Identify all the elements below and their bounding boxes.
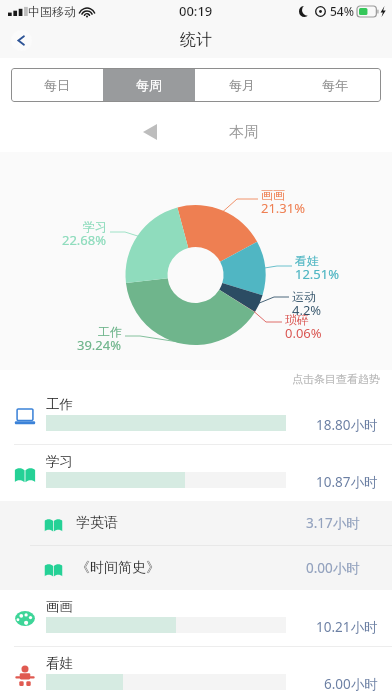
button[interactable]: 《时间简史》	[0, 546, 392, 590]
button[interactable]: 每周	[103, 68, 195, 102]
staticText: 4.2%	[292, 301, 322, 319]
staticText: 学英语	[76, 514, 118, 532]
button[interactable]: 学习	[0, 445, 392, 501]
staticText: 每月	[229, 77, 255, 93]
staticText: 0.06%	[285, 324, 322, 342]
staticText: 看娃	[46, 655, 73, 672]
staticText: 琐碎	[285, 312, 309, 327]
staticText: 22.68%	[62, 231, 107, 249]
staticText: 看娃	[295, 253, 319, 268]
button[interactable]: 学英语	[0, 501, 392, 545]
button[interactable]: 看娃	[0, 647, 392, 696]
staticText: 00:19	[179, 2, 213, 20]
staticText: 画画	[261, 187, 285, 202]
button[interactable]: 画画	[0, 590, 392, 646]
button[interactable]: 每日	[11, 68, 103, 102]
staticText: 工作	[98, 324, 122, 339]
staticText: 画画	[46, 598, 73, 615]
button[interactable]: 每年	[288, 68, 381, 102]
staticText: 中国移动	[28, 4, 76, 19]
button[interactable]: Previous week	[133, 115, 167, 149]
staticText: 工作	[46, 396, 73, 413]
staticText: 每周	[136, 77, 162, 93]
staticText: 《时间简史》	[76, 559, 160, 577]
staticText: 10.21小时	[316, 618, 378, 636]
button[interactable]: 工作	[0, 388, 392, 444]
staticText: 统计	[180, 30, 212, 50]
staticText: 3.17小时	[306, 514, 360, 532]
staticText: 54%	[330, 3, 354, 19]
staticText: 18.80小时	[316, 416, 378, 434]
staticText: 运动	[292, 289, 316, 304]
staticText: 0.00小时	[306, 559, 360, 577]
staticText: 每日	[44, 77, 70, 93]
staticText: 10.87小时	[316, 473, 378, 491]
button[interactable]: 每月	[195, 68, 288, 102]
staticText: 学习	[46, 453, 73, 470]
staticText: 21.31%	[261, 199, 306, 217]
staticText: 本周	[229, 123, 259, 142]
staticText: 点击条目查看趋势	[292, 372, 380, 386]
staticText: 6.00小时	[324, 675, 378, 693]
staticText: 12.51%	[295, 265, 340, 283]
staticText: 每年	[322, 77, 348, 93]
staticText: 学习	[83, 219, 107, 234]
staticText: 39.24%	[77, 336, 122, 354]
button[interactable]: Back	[11, 30, 32, 51]
